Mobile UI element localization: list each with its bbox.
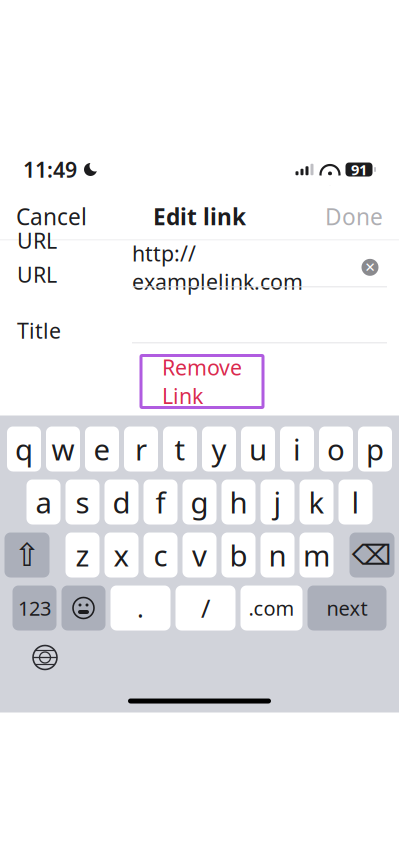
staticText: y <box>211 429 226 468</box>
button[interactable]: Emoji <box>61 585 105 630</box>
staticText: Done <box>325 201 383 231</box>
button[interactable]: k <box>299 479 333 524</box>
staticText: 91 <box>351 160 367 179</box>
staticText: v <box>192 535 207 574</box>
staticText: Remove Link <box>162 353 242 410</box>
button[interactable]: i <box>280 426 314 471</box>
staticText: 123 <box>18 595 51 621</box>
staticText: i <box>293 429 301 468</box>
staticText: k <box>308 482 324 521</box>
staticText: URL <box>17 226 57 255</box>
staticText: d <box>112 482 130 521</box>
staticText: b <box>229 535 247 574</box>
button[interactable]: u <box>241 426 275 471</box>
staticText: f <box>155 482 165 521</box>
button[interactable]: Done <box>311 190 397 242</box>
button[interactable]: p <box>358 426 392 471</box>
staticText: u <box>249 429 267 468</box>
button[interactable]: v <box>182 532 216 577</box>
button[interactable]: Switch keyboard <box>23 637 67 677</box>
staticText: w <box>51 429 74 468</box>
button[interactable]: f <box>143 479 177 524</box>
staticText: Title <box>17 316 61 345</box>
staticText: URL <box>17 260 57 289</box>
button[interactable]: e <box>85 426 119 471</box>
button[interactable]: o <box>319 426 353 471</box>
staticText: h <box>229 482 247 521</box>
staticText: q <box>15 429 33 468</box>
button[interactable]: h <box>221 479 255 524</box>
staticText: Edit link <box>153 201 246 231</box>
staticText: a <box>35 482 51 521</box>
button[interactable]: 123 <box>12 585 56 630</box>
button[interactable]: q <box>7 426 41 471</box>
button[interactable]: z <box>65 532 99 577</box>
staticText: s <box>75 482 89 521</box>
button[interactable]: Remove Link <box>141 355 263 407</box>
button[interactable]: g <box>182 479 216 524</box>
staticText: r <box>135 429 147 468</box>
button[interactable]: Shift <box>4 532 49 577</box>
staticText: 11:49 <box>23 155 77 184</box>
button[interactable]: next <box>307 585 386 630</box>
staticText: j <box>273 482 281 521</box>
button[interactable]: s <box>65 479 99 524</box>
button[interactable]: n <box>260 532 294 577</box>
staticText: ⇧ <box>13 537 40 573</box>
button[interactable]: x <box>104 532 138 577</box>
button[interactable]: l <box>338 479 372 524</box>
button[interactable]: w <box>46 426 80 471</box>
button[interactable]: Cancel <box>2 190 101 242</box>
button[interactable]: j <box>260 479 294 524</box>
staticText: next <box>326 595 367 621</box>
staticText: z <box>75 535 89 574</box>
button[interactable]: / <box>175 585 235 630</box>
staticText: Cancel <box>16 201 87 231</box>
staticText: / <box>201 591 210 625</box>
button[interactable]: Delete <box>349 532 394 577</box>
staticText: c <box>153 535 167 574</box>
staticText: ⌫ <box>352 539 392 571</box>
button[interactable]: b <box>221 532 255 577</box>
button[interactable]: t <box>163 426 197 471</box>
staticText: .com <box>248 595 294 621</box>
staticText: o <box>327 429 345 468</box>
button[interactable]: d <box>104 479 138 524</box>
button[interactable]: m <box>299 532 333 577</box>
staticText: p <box>366 429 384 468</box>
staticText: n <box>268 535 286 574</box>
staticText: http://examplelink.com <box>132 239 303 296</box>
staticText: l <box>351 482 359 521</box>
staticText: t <box>174 429 185 468</box>
staticText: g <box>190 482 208 521</box>
button[interactable]: c <box>143 532 177 577</box>
button[interactable]: a <box>26 479 60 524</box>
button[interactable]: y <box>202 426 236 471</box>
button[interactable]: Clear URL <box>353 249 387 285</box>
button[interactable]: r <box>124 426 158 471</box>
staticText: m <box>303 535 330 574</box>
staticText: x <box>113 535 129 574</box>
staticText: ✕ <box>364 260 375 275</box>
button[interactable]: .com <box>240 585 302 630</box>
button[interactable]: . <box>110 585 170 630</box>
staticText: e <box>93 429 110 468</box>
staticText: . <box>137 591 144 625</box>
